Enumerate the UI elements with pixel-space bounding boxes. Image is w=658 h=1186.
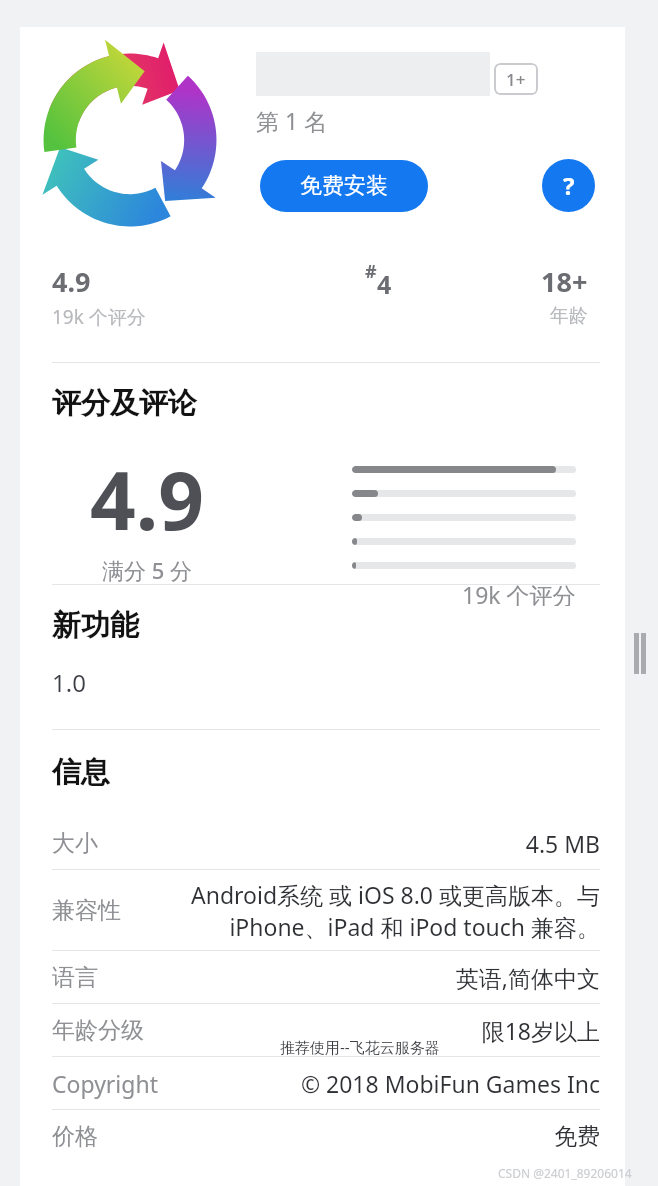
- button[interactable]: 免费安装: [260, 160, 428, 212]
- staticText: © 2018 MobiFun Games Inc: [300, 1068, 600, 1099]
- button[interactable]: 兼容性: [20, 870, 625, 950]
- staticText: ?: [563, 169, 575, 202]
- staticText: 英语,简体中文: [455, 962, 600, 993]
- staticText: 18+: [541, 263, 588, 300]
- button[interactable]: Help: [542, 159, 595, 212]
- button[interactable]: 大小: [20, 817, 625, 869]
- staticText: 新功能: [52, 607, 139, 644]
- staticText: Copyright: [52, 1068, 158, 1099]
- staticText: 第 1 名: [256, 105, 328, 136]
- staticText: 兼容性: [52, 896, 121, 925]
- staticText: 评分及评论: [52, 385, 197, 422]
- staticText: 4.5 MB: [525, 828, 600, 859]
- staticText: 年龄: [550, 304, 588, 328]
- button[interactable]: 1+: [494, 63, 538, 95]
- staticText: 语言: [52, 963, 98, 992]
- staticText: 免费: [554, 1122, 600, 1151]
- button[interactable]: 年龄分级: [20, 1004, 625, 1056]
- staticText: 免费安装: [300, 172, 388, 200]
- staticText: 4: [377, 267, 392, 301]
- staticText: #: [365, 259, 377, 284]
- staticText: 4.9: [52, 263, 91, 300]
- button[interactable]: Copyright: [20, 1057, 625, 1109]
- staticText: 价格: [52, 1122, 98, 1151]
- staticText: 19k 个评分: [462, 579, 576, 606]
- staticText: 4.9: [90, 444, 204, 553]
- staticText: CSDN @2401_89206014: [498, 1165, 632, 1181]
- button[interactable]: 语言: [20, 951, 625, 1003]
- staticText: 限18岁以上: [481, 1015, 600, 1046]
- staticText: 满分 5 分: [102, 555, 193, 584]
- staticText: 信息: [52, 754, 110, 791]
- staticText: 19k 个评分: [52, 304, 146, 330]
- button[interactable]: 价格: [20, 1110, 625, 1162]
- staticText: 大小: [52, 829, 98, 858]
- staticText: 1+: [506, 68, 526, 91]
- staticText: 1.0: [52, 666, 86, 699]
- staticText: Android系统 或 iOS 8.0 或更高版本。与 iPhone、iPad …: [133, 879, 600, 942]
- staticText: 推荐使用--飞花云服务器: [280, 1037, 440, 1057]
- staticText: 年龄分级: [52, 1016, 144, 1045]
